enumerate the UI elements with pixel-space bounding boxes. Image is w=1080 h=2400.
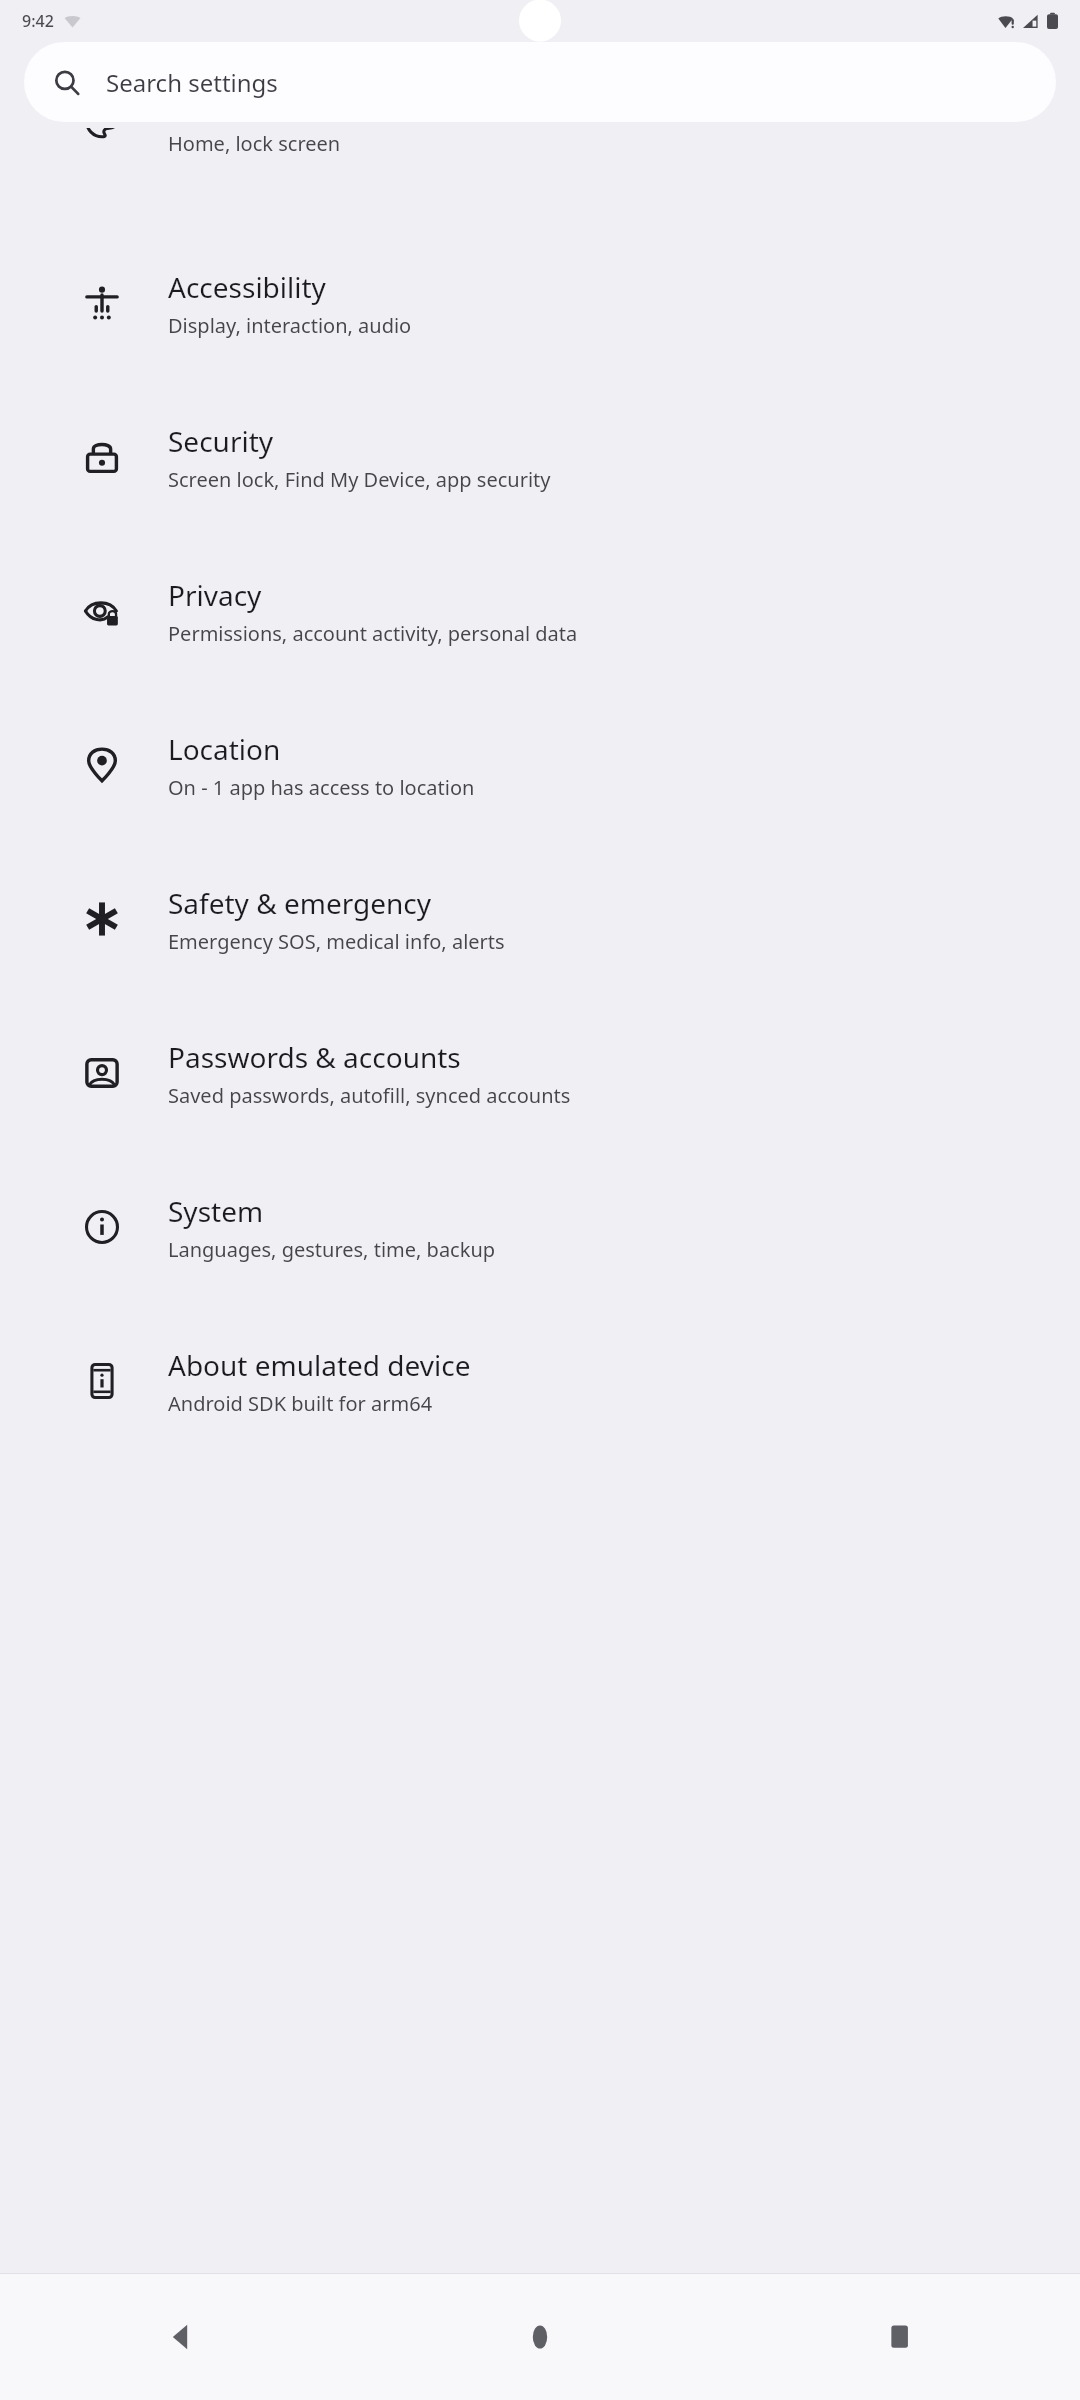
staticText: Screen lock, Find My Device, app securit… [168, 466, 551, 493]
button[interactable]: Location [0, 688, 1080, 842]
button[interactable]: Privacy [0, 534, 1080, 688]
staticText: On - 1 app has access to location [168, 774, 475, 801]
button[interactable]: Safety & emergency [0, 842, 1080, 996]
button[interactable]: Search settings [24, 42, 1056, 122]
staticText: Safety & emergency [168, 884, 432, 922]
staticText: Android SDK built for arm64 [168, 1390, 433, 1417]
button[interactable]: Security [0, 380, 1080, 534]
staticText: System [168, 1192, 264, 1230]
button[interactable]: Passwords & accounts [0, 996, 1080, 1150]
staticText: Languages, gestures, time, backup [168, 1236, 496, 1263]
staticText: Search settings [106, 66, 278, 99]
button[interactable]: Home [360, 2274, 720, 2400]
button[interactable]: About emulated device [0, 1304, 1080, 1458]
button[interactable]: Recent apps [720, 2274, 1080, 2400]
staticText: Saved passwords, autofill, synced accoun… [168, 1082, 571, 1109]
staticText: Location [168, 730, 281, 768]
staticText: About emulated device [168, 1346, 471, 1384]
staticText: Passwords & accounts [168, 1038, 461, 1076]
button[interactable]: System [0, 1150, 1080, 1304]
staticText: Security [168, 422, 274, 460]
button[interactable]: Wallpaper [0, 128, 1080, 170]
staticText: Privacy [168, 576, 262, 614]
staticText: 9:42 [22, 10, 54, 32]
staticText: Accessibility [168, 268, 326, 306]
button[interactable]: Accessibility [0, 226, 1080, 380]
staticText: Display, interaction, audio [168, 312, 412, 339]
staticText: Emergency SOS, medical info, alerts [168, 928, 505, 955]
staticText: Permissions, account activity, personal … [168, 620, 578, 647]
staticText: Home, lock screen [168, 130, 341, 157]
button[interactable]: Back [0, 2274, 360, 2400]
